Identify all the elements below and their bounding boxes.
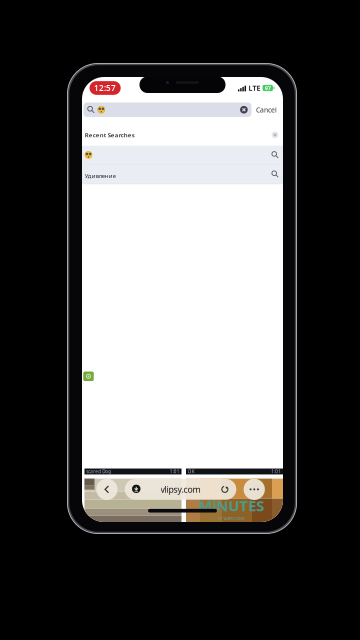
button[interactable]: Clear recent searches: [269, 129, 281, 141]
staticText: LTE: [248, 83, 260, 93]
staticText: Recent Searches: [85, 131, 135, 139]
button[interactable]: Back: [96, 479, 117, 500]
staticText: vlipsy.com: [161, 483, 201, 495]
button[interactable]: Reload: [216, 479, 234, 500]
button[interactable]: More: [244, 479, 265, 500]
button[interactable]: Share: [81, 369, 95, 383]
button[interactable]: Downloads: [127, 479, 145, 500]
staticText: MiNUTES: [198, 495, 264, 515]
staticText: 12:57: [94, 83, 116, 93]
button[interactable]: [82, 146, 283, 165]
staticText: BY VLIPSY.COM: [217, 516, 244, 521]
staticText: OK: [188, 468, 195, 475]
button[interactable]: Cancel: [251, 102, 281, 117]
staticText: Cancel: [256, 105, 277, 114]
staticText: Удивление: [85, 172, 116, 180]
staticText: 97: [265, 84, 271, 92]
staticText: 1:01: [271, 468, 281, 475]
staticText: 1:01: [170, 468, 180, 475]
button[interactable]: Удивление: [82, 165, 283, 184]
staticText: scared Dog: [86, 468, 111, 475]
